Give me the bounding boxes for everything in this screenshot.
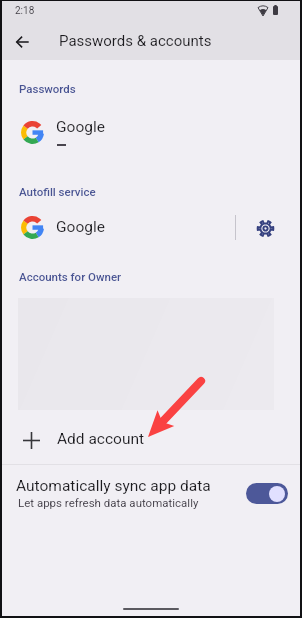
staticText: Passwords & accounts xyxy=(59,32,212,50)
button[interactable]: Add account xyxy=(2,417,300,463)
button[interactable]: Google xyxy=(2,111,300,157)
staticText: Google xyxy=(56,218,105,236)
staticText: Add account xyxy=(57,430,145,448)
staticText: Passwords xyxy=(19,82,76,95)
button[interactable]: Google xyxy=(2,206,234,250)
staticText: Google xyxy=(56,118,105,136)
staticText: Accounts for Owner xyxy=(19,270,122,283)
button[interactable]: Back xyxy=(6,26,38,58)
staticText: 2:18 xyxy=(15,5,35,17)
staticText: Autofill service xyxy=(19,185,96,198)
button[interactable]: Automatically sync app data xyxy=(2,465,300,523)
staticText: Let apps refresh data automatically xyxy=(18,496,199,509)
button[interactable]: Autofill settings xyxy=(248,211,282,245)
staticText: Automatically sync app data xyxy=(16,477,211,495)
